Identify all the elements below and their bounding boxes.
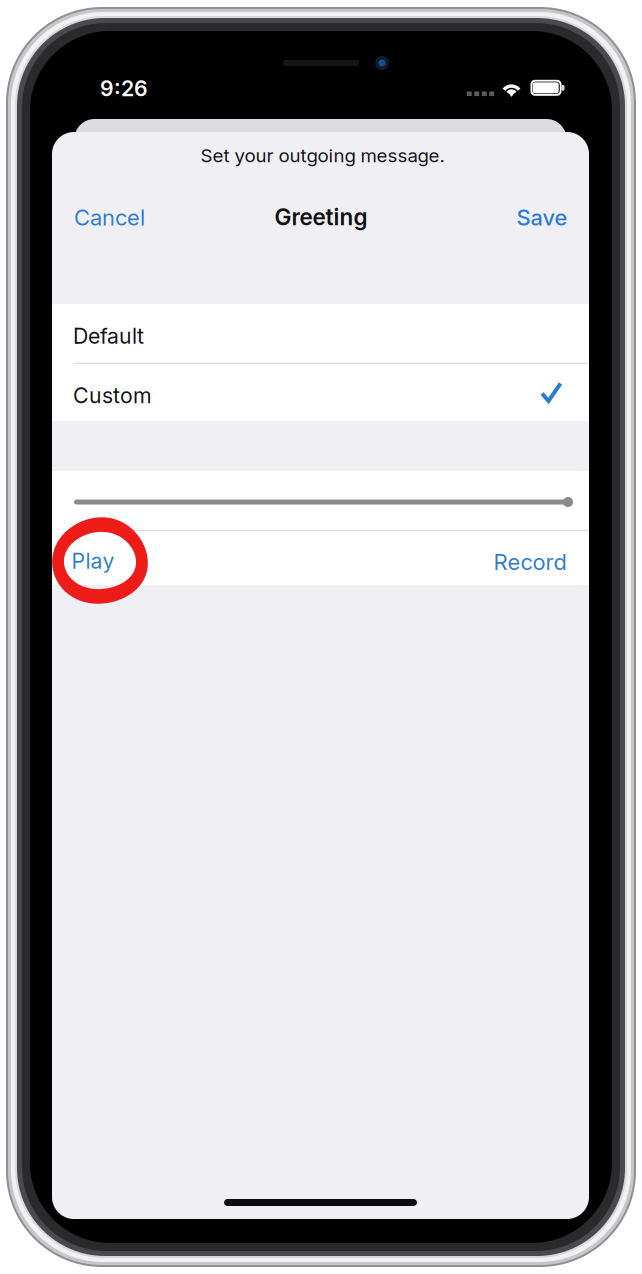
- button[interactable]: Save: [494, 191, 590, 243]
- button[interactable]: Cancel: [54, 191, 164, 243]
- staticText: Greeting: [274, 203, 367, 231]
- button[interactable]: Default: [52, 304, 589, 363]
- button[interactable]: Play: [71, 533, 221, 585]
- staticText: 9:26: [100, 76, 148, 101]
- staticText: Default: [73, 323, 144, 349]
- staticText: Play: [71, 548, 114, 574]
- staticText: Custom: [73, 383, 152, 408]
- staticText: Set your outgoing message.: [200, 144, 444, 167]
- staticText: Record: [493, 549, 566, 575]
- staticText: Save: [516, 204, 567, 231]
- staticText: Cancel: [74, 204, 145, 231]
- button[interactable]: Custom: [52, 364, 589, 421]
- button[interactable]: Record: [406, 533, 566, 585]
